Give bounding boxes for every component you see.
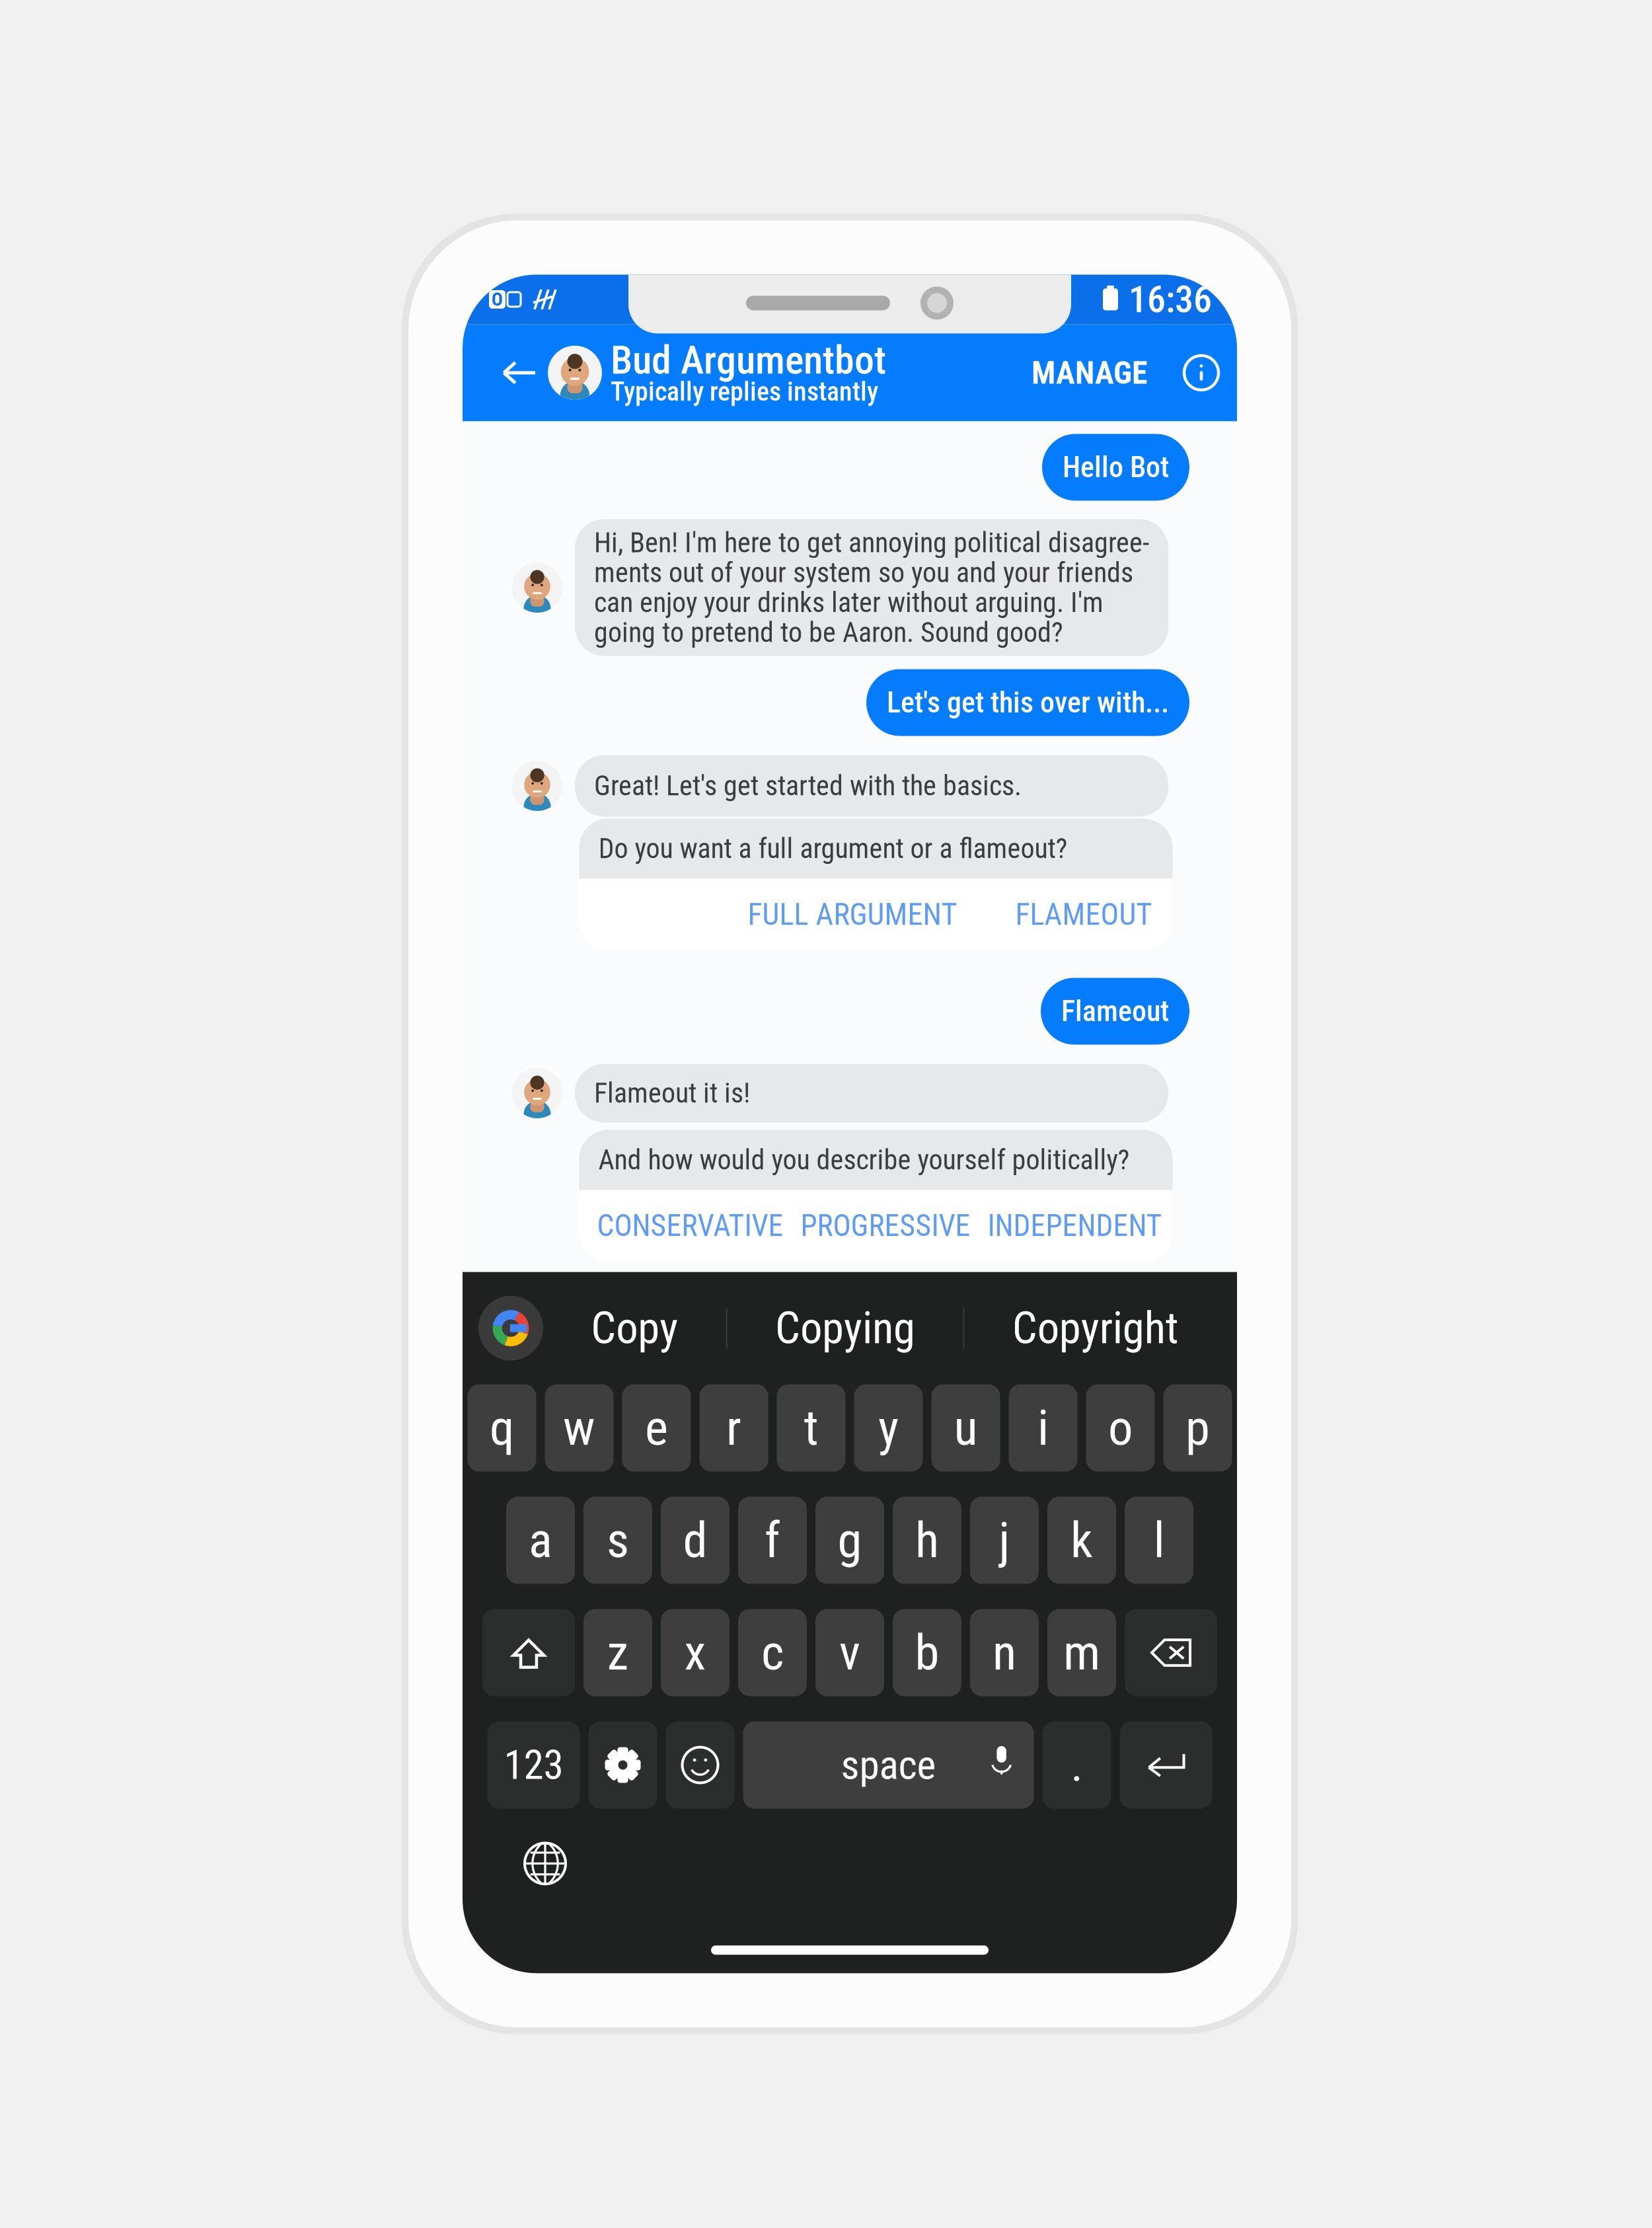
button[interactable]: Switch keyboard: [517, 1835, 574, 1892]
staticText: y: [878, 1405, 899, 1451]
staticText: l: [1153, 1517, 1165, 1563]
button[interactable]: .: [1042, 1721, 1111, 1809]
button[interactable]: 123: [487, 1721, 580, 1809]
staticText: Copyright: [1012, 1307, 1179, 1349]
button[interactable]: [482, 1609, 575, 1696]
button[interactable]: l: [1125, 1497, 1193, 1584]
button[interactable]: k: [1047, 1497, 1116, 1584]
staticText: space: [841, 1746, 936, 1784]
staticText: k: [1070, 1517, 1093, 1563]
staticText: Bud Argumentbot: [611, 341, 886, 379]
button[interactable]: [588, 1721, 657, 1809]
staticText: Hi, Ben! I'm here to get annoying politi…: [594, 528, 1149, 647]
staticText: PROGRESSIVE: [801, 1210, 970, 1241]
button[interactable]: r: [699, 1384, 768, 1472]
staticText: f: [765, 1517, 780, 1563]
button[interactable]: o: [1086, 1384, 1155, 1472]
staticText: o: [1108, 1405, 1133, 1451]
button[interactable]: Back: [490, 352, 548, 394]
button[interactable]: c: [738, 1609, 807, 1696]
button[interactable]: h: [893, 1497, 961, 1584]
staticText: p: [1185, 1405, 1210, 1451]
staticText: q: [490, 1405, 514, 1451]
staticText: r: [726, 1405, 741, 1451]
button[interactable]: [1125, 1609, 1217, 1696]
button[interactable]: w: [545, 1384, 614, 1472]
staticText: 123: [504, 1746, 563, 1784]
staticText: Flameout it is!: [594, 1078, 750, 1108]
staticText: x: [684, 1630, 706, 1676]
staticText: b: [915, 1630, 939, 1676]
staticText: v: [839, 1630, 860, 1676]
staticText: Do you want a full argument or a flameou…: [598, 834, 1068, 864]
button[interactable]: x: [661, 1609, 730, 1696]
button[interactable]: Hello Bot: [1042, 434, 1189, 501]
button[interactable]: MANAGE: [1032, 346, 1148, 400]
staticText: s: [607, 1517, 629, 1563]
button[interactable]: v: [815, 1609, 884, 1696]
button[interactable]: j: [970, 1497, 1039, 1584]
button[interactable]: Google: [478, 1296, 543, 1361]
staticText: d: [683, 1517, 707, 1563]
button[interactable]: y: [854, 1384, 923, 1472]
staticText: e: [645, 1405, 668, 1451]
button[interactable]: s: [583, 1497, 652, 1584]
button[interactable]: q: [468, 1384, 536, 1472]
staticText: Hello Bot: [1063, 454, 1169, 481]
staticText: Great! Let's get started with the basics…: [594, 771, 1022, 801]
button[interactable]: FULL ARGUMENT: [748, 879, 957, 950]
button[interactable]: Copyright: [1012, 1288, 1179, 1368]
button[interactable]: e: [622, 1384, 691, 1472]
staticText: a: [529, 1517, 552, 1563]
button[interactable]: space: [743, 1721, 1034, 1809]
button[interactable]: m: [1047, 1609, 1116, 1696]
staticText: O: [492, 289, 503, 310]
staticText: Copy: [591, 1307, 678, 1349]
staticText: m: [1063, 1630, 1100, 1676]
button[interactable]: n: [970, 1609, 1039, 1696]
button[interactable]: i: [1009, 1384, 1077, 1472]
staticText: h: [915, 1517, 939, 1563]
button[interactable]: INDEPENDENT: [988, 1190, 1162, 1261]
staticText: z: [607, 1630, 629, 1676]
button[interactable]: g: [815, 1497, 884, 1584]
button[interactable]: f: [738, 1497, 807, 1584]
staticText: .: [1071, 1744, 1083, 1786]
button[interactable]: [1120, 1721, 1212, 1809]
button[interactable]: a: [506, 1497, 575, 1584]
staticText: w: [563, 1405, 595, 1451]
staticText: t: [804, 1405, 818, 1451]
button[interactable]: PROGRESSIVE: [801, 1190, 970, 1261]
button[interactable]: Copy: [591, 1288, 678, 1368]
button[interactable]: b: [893, 1609, 961, 1696]
staticText: Let's get this over with...: [887, 689, 1169, 716]
staticText: j: [999, 1517, 1010, 1563]
staticText: n: [993, 1630, 1016, 1676]
staticText: i: [1037, 1405, 1049, 1451]
staticText: Copying: [775, 1307, 915, 1349]
button[interactable]: FLAMEOUT: [1015, 879, 1152, 950]
staticText: FULL ARGUMENT: [748, 898, 957, 930]
button[interactable]: z: [583, 1609, 652, 1696]
staticText: CONSERVATIVE: [597, 1210, 783, 1241]
staticText: Flameout: [1061, 998, 1169, 1025]
staticText: FLAMEOUT: [1015, 898, 1152, 930]
staticText: Typically replies instantly: [611, 379, 878, 404]
button[interactable]: t: [777, 1384, 845, 1472]
button[interactable]: p: [1163, 1384, 1232, 1472]
button[interactable]: u: [931, 1384, 1000, 1472]
button[interactable]: Conversation details: [1148, 346, 1219, 399]
button[interactable]: [666, 1721, 734, 1809]
button[interactable]: d: [661, 1497, 730, 1584]
button[interactable]: CONSERVATIVE: [597, 1190, 783, 1261]
button[interactable]: Let's get this over with...: [866, 669, 1189, 736]
staticText: 16:36: [1129, 282, 1212, 317]
staticText: u: [954, 1405, 978, 1451]
button[interactable]: Copying: [775, 1288, 915, 1368]
staticText: MANAGE: [1032, 358, 1148, 388]
button[interactable]: Flameout: [1041, 978, 1189, 1045]
staticText: INDEPENDENT: [988, 1210, 1162, 1241]
staticText: c: [761, 1630, 784, 1676]
staticText: And how would you describe yourself poli…: [598, 1145, 1130, 1175]
staticText: g: [838, 1517, 862, 1563]
